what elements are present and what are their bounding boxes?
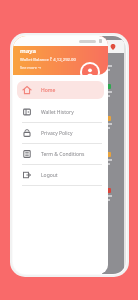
staticText: Privacy Policy (41, 130, 73, 137)
staticText: Wallet Balance ₹ 4,12,292.00 (20, 57, 76, 63)
button[interactable]: Term & Conditions (17, 145, 104, 163)
staticText: See more → (20, 65, 42, 70)
button[interactable]: Logout (17, 166, 104, 184)
button[interactable]: Wallet History (17, 103, 104, 121)
button[interactable]: Home (17, 81, 104, 99)
staticText: Term & Conditions (41, 151, 85, 158)
staticText: maya (20, 47, 37, 55)
staticText: Wallet History (41, 109, 74, 116)
button[interactable]: Privacy Policy (17, 124, 104, 142)
staticText: Home (41, 87, 56, 94)
staticText: Logout (41, 172, 58, 179)
